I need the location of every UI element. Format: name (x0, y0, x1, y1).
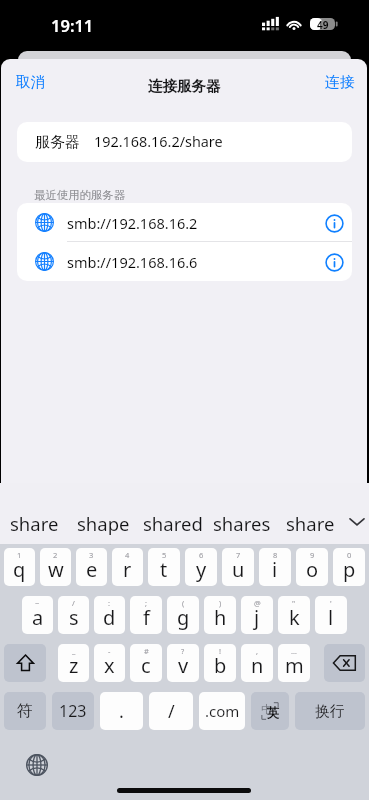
staticText: 123 (59, 700, 87, 722)
staticText: v (178, 652, 189, 679)
staticText: h (214, 604, 227, 631)
button[interactable]: share (276, 483, 345, 544)
staticText: p (343, 556, 356, 583)
button[interactable]: ; (130, 596, 162, 634)
staticText: shared (143, 511, 203, 536)
staticText: e (86, 556, 98, 583)
staticText: " (292, 598, 296, 608)
staticText: c (141, 652, 151, 679)
button[interactable]: Hide keyboard (345, 483, 369, 544)
staticText: ( (182, 598, 185, 608)
staticText: shape (77, 511, 130, 536)
staticText: 1 (17, 550, 22, 560)
button[interactable]: shares (207, 483, 276, 544)
button[interactable]: .com (199, 692, 245, 730)
button[interactable]: Shift (4, 644, 46, 682)
staticText: ? (181, 646, 185, 656)
button[interactable]: shape (69, 483, 138, 544)
button[interactable]: 0 (333, 548, 365, 586)
staticText: f (143, 604, 150, 631)
staticText: … (291, 646, 297, 656)
button[interactable]: 换行 (295, 692, 365, 730)
staticText: shares (213, 511, 271, 536)
button[interactable]: 取消 (1, 69, 60, 98)
staticText: a (32, 604, 44, 631)
button[interactable]: 4 (112, 548, 143, 586)
button[interactable]: 5 (148, 548, 180, 586)
staticText: _ (72, 646, 76, 656)
button[interactable]: 6 (185, 548, 217, 586)
staticText: 3 (89, 550, 94, 560)
staticText: 0 (347, 550, 352, 560)
button[interactable]: Change keyboard (26, 754, 48, 776)
staticText: 换行 (315, 702, 345, 721)
button[interactable]: , (241, 644, 273, 682)
button[interactable]: Info (319, 208, 349, 238)
staticText: 连接 (325, 73, 355, 92)
staticText: l (328, 604, 334, 631)
button[interactable]: 3 (76, 548, 107, 586)
button[interactable]: smb://192.168.16.6 (17, 242, 352, 281)
button[interactable]: smb://192.168.16.2 (17, 203, 352, 242)
button[interactable]: - (94, 644, 125, 682)
button[interactable]: # (130, 644, 162, 682)
button[interactable]: 2 (40, 548, 71, 586)
button[interactable]: / (58, 596, 89, 634)
button[interactable]: ) (204, 596, 236, 634)
button[interactable]: 7 (222, 548, 254, 586)
button[interactable]: ? (167, 644, 199, 682)
staticText: - (108, 646, 111, 656)
staticText: .com (205, 701, 240, 721)
staticText: o (306, 556, 319, 583)
staticText: m (285, 652, 304, 679)
button[interactable]: @ (241, 596, 273, 634)
staticText: w (48, 556, 64, 583)
staticText: 取消 (16, 73, 46, 92)
staticText: @ (254, 598, 261, 608)
button[interactable]: … (278, 644, 310, 682)
staticText: i (272, 556, 278, 583)
button[interactable]: Backspace (324, 644, 365, 682)
button[interactable]: " (278, 596, 310, 634)
button[interactable]: 1 (4, 548, 35, 586)
button[interactable]: _ (58, 644, 89, 682)
button[interactable]: 8 (259, 548, 291, 586)
button[interactable]: 123 (52, 692, 94, 730)
staticText: ) (219, 598, 222, 608)
button[interactable]: Info (319, 247, 349, 277)
staticText: q (13, 556, 26, 583)
staticText: 9 (310, 550, 315, 560)
staticText: 8 (273, 550, 278, 560)
staticText: , (256, 646, 259, 656)
staticText: 49 (317, 18, 329, 30)
button[interactable]: 服务器 (17, 122, 352, 162)
staticText: b (214, 652, 227, 679)
staticText: 19:11 (51, 14, 94, 36)
staticText: share (286, 511, 335, 536)
staticText: / (168, 699, 175, 724)
staticText: n (251, 652, 264, 679)
staticText: t (160, 556, 168, 583)
button[interactable]: : (94, 596, 125, 634)
staticText: 2 (53, 550, 58, 560)
button[interactable]: . (100, 692, 143, 730)
button[interactable]: share (0, 483, 69, 544)
button[interactable]: ( (167, 596, 199, 634)
staticText: 中 (261, 702, 272, 716)
button[interactable]: / (149, 692, 193, 730)
button[interactable]: 9 (296, 548, 328, 586)
button[interactable]: 连接 (311, 69, 367, 98)
staticText: / (72, 598, 75, 608)
staticText: j (254, 604, 260, 631)
staticText: 连接服务器 (148, 77, 221, 95)
button[interactable]: ~ (22, 596, 53, 634)
button[interactable]: shared (138, 483, 207, 544)
button[interactable]: 符 (4, 692, 46, 730)
staticText: s (69, 604, 79, 631)
staticText: share (10, 511, 59, 536)
staticText: : (108, 598, 111, 608)
button[interactable]: Switch Chinese English (251, 692, 289, 730)
staticText: ; (145, 598, 148, 608)
button[interactable]: ! (204, 644, 236, 682)
button[interactable]: ' (315, 596, 347, 634)
